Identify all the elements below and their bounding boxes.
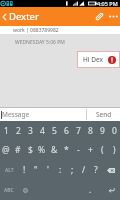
button[interactable]: 0	[108, 121, 120, 140]
button[interactable]: +	[84, 140, 96, 160]
button[interactable]: @	[0, 140, 12, 160]
button[interactable]: -	[72, 140, 84, 160]
staticText: 9	[100, 125, 105, 137]
button[interactable]: #	[12, 140, 24, 160]
staticText: Hi Dex	[83, 55, 103, 64]
staticText: %	[38, 144, 46, 156]
staticText: ;	[71, 164, 74, 176]
button[interactable]: ABC	[0, 180, 18, 200]
button[interactable]: :	[54, 160, 66, 180]
button[interactable]: Hi Dex	[77, 51, 120, 68]
staticText: @	[2, 144, 10, 156]
staticText: )	[113, 144, 116, 156]
staticText: Dexter	[9, 10, 39, 23]
staticText: 4	[40, 125, 45, 137]
button[interactable]: 3	[24, 121, 36, 140]
button[interactable]: Back	[0, 7, 9, 26]
staticText: 3	[28, 125, 33, 137]
staticText: $	[28, 144, 33, 156]
button[interactable]: /	[78, 160, 90, 180]
button[interactable]: 1	[0, 121, 12, 140]
staticText: 5	[52, 125, 57, 137]
staticText: 4:05 PM	[97, 0, 118, 7]
staticText: 0	[112, 125, 117, 137]
button[interactable]: 6	[60, 121, 72, 140]
staticText: 2	[16, 125, 21, 137]
button[interactable]: !	[18, 160, 30, 180]
staticText: 7	[76, 125, 81, 137]
button[interactable]: "	[30, 160, 42, 180]
button[interactable]: Delete	[102, 160, 120, 180]
button[interactable]: 9	[96, 121, 108, 140]
button[interactable]: &	[48, 140, 60, 160]
staticText: .	[89, 184, 92, 196]
button[interactable]: Attach	[92, 7, 106, 26]
staticText: &	[51, 144, 58, 156]
button[interactable]: )	[108, 140, 120, 160]
button[interactable]: 7	[72, 121, 84, 140]
staticText: #	[15, 144, 21, 156]
button[interactable]: '	[42, 160, 54, 180]
button[interactable]: Send	[87, 108, 120, 121]
staticText: 6	[64, 125, 69, 137]
staticText: :	[59, 164, 62, 176]
button[interactable]: work | 0883789982	[0, 26, 120, 34]
staticText: "	[34, 164, 38, 176]
button[interactable]: Message	[0, 108, 86, 121]
button[interactable]: More options	[106, 7, 120, 26]
staticText: Message	[2, 110, 30, 119]
button[interactable]: Enter	[103, 180, 120, 200]
button[interactable]: ;	[66, 160, 78, 180]
staticText: ALT	[5, 167, 14, 174]
button[interactable]: ALT	[0, 160, 18, 180]
button[interactable]: *	[60, 140, 72, 160]
staticText: ABC	[4, 187, 14, 194]
staticText: Send	[96, 110, 112, 119]
staticText: '	[47, 164, 49, 176]
staticText: +	[88, 144, 93, 156]
button[interactable]: 2	[12, 121, 24, 140]
staticText: /	[82, 164, 86, 176]
button[interactable]: 5	[48, 121, 60, 140]
button[interactable]: 4	[36, 121, 48, 140]
button[interactable]: 8	[84, 121, 96, 140]
staticText: ?	[94, 164, 98, 176]
button[interactable]: %	[36, 140, 48, 160]
staticText: 8	[88, 125, 93, 137]
staticText: WEDNESDAY 5:06 PM	[15, 39, 65, 46]
staticText: -	[77, 144, 80, 156]
button[interactable]: $	[24, 140, 36, 160]
button[interactable]: .	[77, 180, 103, 200]
button[interactable]: ?	[90, 160, 102, 180]
staticText: (	[101, 144, 104, 156]
button[interactable]: (	[96, 140, 108, 160]
staticText: *	[64, 144, 69, 156]
staticText: 1	[4, 125, 9, 137]
staticText: work | 0883789982	[13, 27, 59, 34]
button[interactable]: Emoji	[18, 180, 33, 200]
staticText: !	[23, 164, 26, 176]
